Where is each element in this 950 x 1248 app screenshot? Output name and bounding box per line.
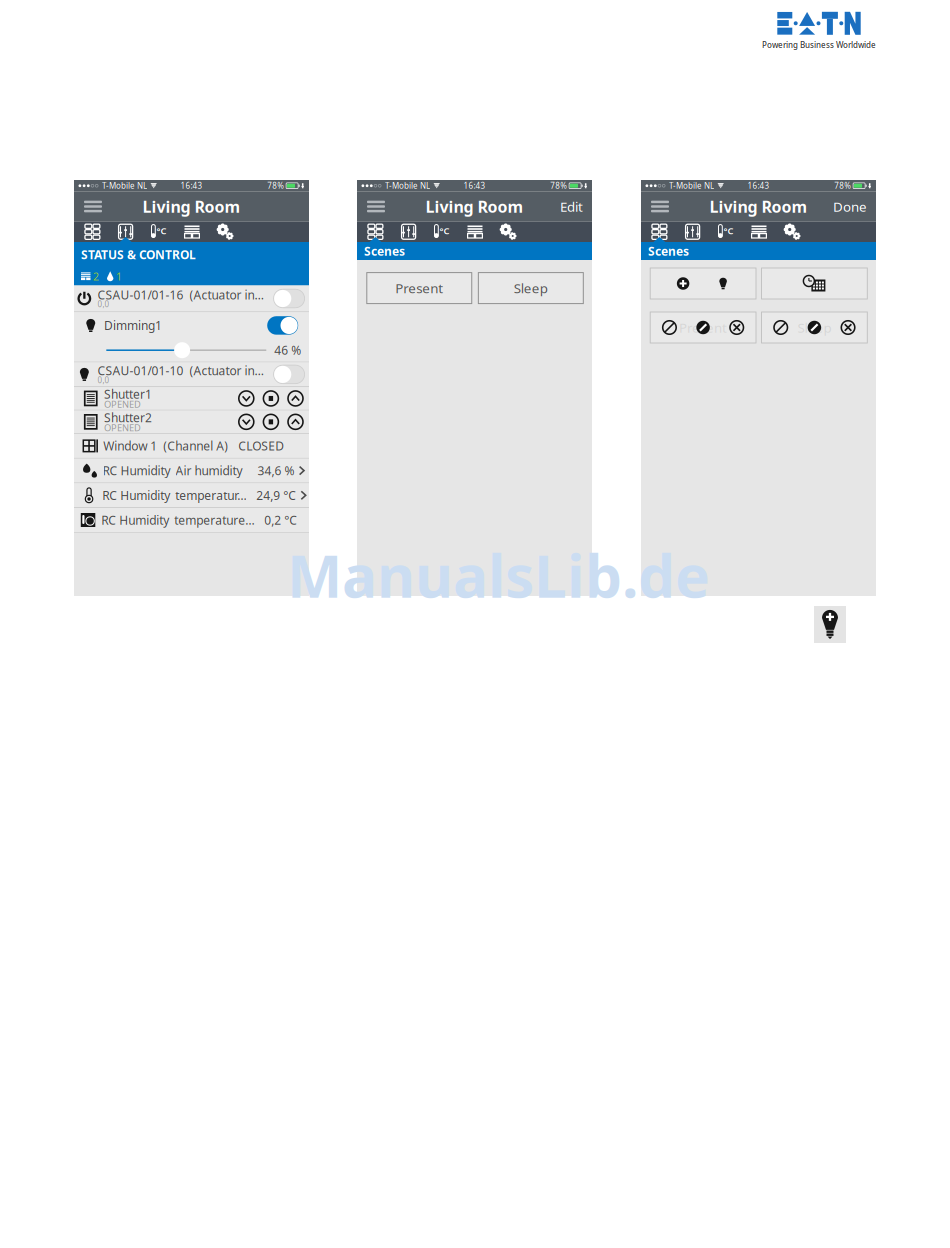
button[interactable]: Edit Sleep xyxy=(761,312,867,343)
staticText: T-Mobile NL xyxy=(102,180,147,191)
button[interactable]: Raise xyxy=(287,390,304,407)
staticText: STATUS & CONTROL xyxy=(81,246,196,262)
staticText: 1 xyxy=(116,269,122,283)
button[interactable]: Stop xyxy=(262,390,279,407)
staticText: Living Room xyxy=(425,196,523,217)
staticText: T-Mobile NL xyxy=(385,180,430,191)
staticText: Living Room xyxy=(709,196,807,217)
button[interactable]: Settings xyxy=(209,221,242,242)
button[interactable]: Present xyxy=(367,273,472,304)
staticText: OPENED xyxy=(104,421,141,434)
staticText: Done xyxy=(833,198,867,215)
staticText: Sleep xyxy=(514,279,548,297)
staticText: RC Humidity xyxy=(102,463,170,478)
staticText: 24,9 °C xyxy=(256,487,296,503)
staticText: 46 % xyxy=(274,342,301,358)
staticText: Sleep xyxy=(797,319,831,336)
staticText: Edit xyxy=(560,198,583,215)
staticText: RC Humidity xyxy=(101,512,169,528)
staticText: °C xyxy=(439,225,449,237)
button[interactable]: Turn on xyxy=(274,365,305,384)
button[interactable]: RC Humidity xyxy=(74,483,309,507)
staticText: °C xyxy=(156,225,166,237)
staticText: temperature… xyxy=(174,512,254,528)
button[interactable]: RC Humidity xyxy=(74,459,309,483)
staticText: 78% xyxy=(550,180,567,191)
button[interactable]: Temperature xyxy=(709,221,742,242)
staticText: Present xyxy=(679,319,727,336)
staticText: 34,6 % xyxy=(258,463,295,478)
staticText: Air humidity xyxy=(175,463,242,478)
staticText: 78% xyxy=(834,180,851,191)
button[interactable]: Blinds xyxy=(742,221,776,242)
button[interactable]: Temperature xyxy=(142,221,175,242)
staticText: Scenes xyxy=(364,243,405,259)
staticText: Shutter1 xyxy=(104,386,152,402)
button[interactable]: CSAU-01/01-16 (Actuator in… xyxy=(74,285,309,311)
staticText: 0,0 xyxy=(98,375,110,385)
button[interactable]: Blinds xyxy=(175,221,209,242)
button[interactable]: Scenes xyxy=(643,221,676,242)
button[interactable]: Done xyxy=(828,191,876,221)
button[interactable]: RC Humidity xyxy=(74,508,309,532)
staticText: 16:43 xyxy=(463,180,485,191)
staticText: Present xyxy=(395,279,443,297)
staticText: RC Humidity xyxy=(102,487,170,503)
button[interactable]: Menu xyxy=(74,191,122,221)
staticText: °C xyxy=(723,225,733,237)
button[interactable]: Scenes xyxy=(359,221,392,242)
staticText: Shutter2 xyxy=(104,410,152,425)
staticText: Scenes xyxy=(648,243,689,259)
button[interactable]: Turn on xyxy=(274,289,305,308)
staticText: Powering Business Worldwide xyxy=(762,39,876,50)
button[interactable]: Window 1 (Channel A) xyxy=(74,434,309,458)
button[interactable]: Dimming xyxy=(392,221,425,242)
staticText: 16:43 xyxy=(747,180,769,191)
staticText: temperatur… xyxy=(175,487,246,503)
button[interactable]: Dimming xyxy=(109,221,142,242)
staticText: 0,0 xyxy=(98,299,110,309)
button[interactable]: Lower xyxy=(238,413,255,430)
button[interactable]: Sleep xyxy=(478,273,583,304)
staticText: 16:43 xyxy=(180,180,202,191)
staticText: Dimming1 xyxy=(104,317,162,333)
button[interactable]: Settings xyxy=(776,221,809,242)
button[interactable]: Edit Present xyxy=(650,312,756,343)
button[interactable]: Scenes xyxy=(76,221,109,242)
button[interactable]: Stop xyxy=(262,413,279,430)
button[interactable]: Lower xyxy=(238,390,255,407)
button[interactable]: Dimming xyxy=(676,221,709,242)
button[interactable]: Edit xyxy=(544,191,592,221)
button[interactable]: Blinds xyxy=(458,221,492,242)
staticText: OPENED xyxy=(104,398,141,410)
staticText: Living Room xyxy=(142,196,240,217)
button[interactable]: Temperature xyxy=(425,221,458,242)
staticText: 78% xyxy=(267,180,284,191)
staticText: CSAU-01/01-16 (Actuator in… xyxy=(98,287,264,303)
staticText: Window 1 (Channel A) xyxy=(103,438,228,454)
staticText: CSAU-01/01-10 (Actuator in… xyxy=(98,363,264,379)
button[interactable]: CSAU-01/01-10 (Actuator in… xyxy=(74,362,309,386)
staticText: 0,2 °C xyxy=(264,512,297,528)
staticText: ManualsLib.de xyxy=(287,536,710,614)
button[interactable]: Schedule xyxy=(761,268,867,299)
button[interactable]: Raise xyxy=(287,413,304,430)
button[interactable]: Turn off xyxy=(267,316,298,335)
staticText: CLOSED xyxy=(238,438,284,454)
staticText: T-Mobile NL xyxy=(669,180,714,191)
button[interactable]: Add scene xyxy=(650,268,756,299)
staticText: 2 xyxy=(93,269,99,283)
button[interactable]: Menu xyxy=(357,191,405,221)
button[interactable]: Menu xyxy=(641,191,689,221)
button[interactable]: Settings xyxy=(492,221,525,242)
